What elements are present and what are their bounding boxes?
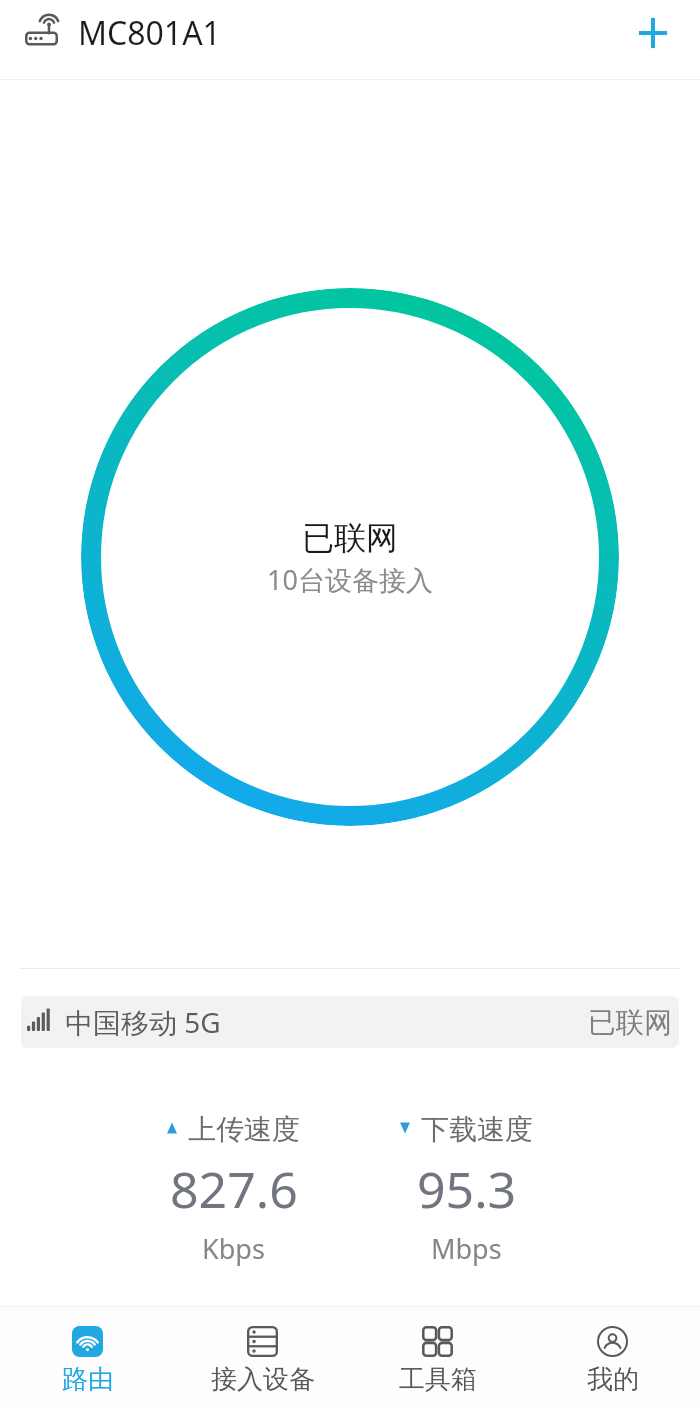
staticText: MC801A1 bbox=[78, 11, 221, 55]
staticText: 路由 bbox=[62, 1363, 114, 1396]
button[interactable]: 我的 bbox=[525, 1307, 700, 1408]
staticText: 已联网 bbox=[588, 1005, 672, 1040]
staticText: 已联网 bbox=[302, 518, 398, 558]
button[interactable]: 中国移动 5G bbox=[21, 996, 679, 1048]
staticText: Mbps bbox=[431, 1230, 502, 1267]
staticText: 95.3 bbox=[417, 1155, 517, 1223]
staticText: 工具箱 bbox=[399, 1363, 477, 1396]
staticText: 我的 bbox=[587, 1363, 639, 1396]
staticText: Kbps bbox=[202, 1230, 265, 1267]
staticText: 827.6 bbox=[170, 1155, 298, 1223]
button[interactable]: Add device bbox=[629, 0, 677, 65]
button[interactable]: 已联网 bbox=[81, 288, 619, 826]
staticText: 下载速度 bbox=[421, 1112, 533, 1147]
staticText: 中国移动 5G bbox=[65, 1003, 221, 1041]
staticText: 接入设备 bbox=[211, 1363, 315, 1396]
staticText: 10台设备接入 bbox=[267, 561, 433, 598]
button[interactable]: 接入设备 bbox=[175, 1307, 350, 1408]
button[interactable]: 工具箱 bbox=[350, 1307, 525, 1408]
staticText: 上传速度 bbox=[188, 1112, 300, 1147]
button[interactable]: 路由 bbox=[0, 1307, 175, 1408]
